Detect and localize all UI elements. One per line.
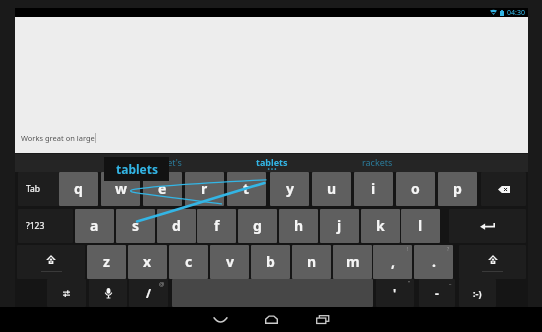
staticText: /: [146, 285, 151, 301]
staticText: .: [432, 252, 436, 271]
staticText: tablet's: [151, 156, 182, 168]
button[interactable]: :-): [459, 279, 496, 307]
button[interactable]: /: [129, 279, 168, 307]
staticText: Tab: [26, 183, 41, 195]
button[interactable]: p: [438, 172, 477, 206]
staticText: h: [294, 216, 304, 235]
button[interactable]: f: [197, 209, 236, 243]
staticText: p: [453, 179, 462, 198]
staticText: r: [201, 179, 208, 198]
button[interactable]: y: [270, 172, 309, 206]
button[interactable]: Home: [257, 307, 285, 332]
button[interactable]: tablets: [222, 154, 322, 172]
staticText: k: [376, 216, 385, 235]
staticText: ": [408, 280, 411, 287]
button[interactable]: i: [354, 172, 393, 206]
staticText: v: [226, 252, 234, 271]
button[interactable]: tablet's: [116, 154, 216, 172]
staticText: j: [337, 216, 342, 235]
button[interactable]: tablets: [104, 157, 169, 181]
staticText: e: [158, 179, 167, 198]
staticText: y: [286, 179, 294, 198]
button[interactable]: x: [128, 245, 167, 279]
button[interactable]: l: [401, 209, 440, 243]
staticText: ?123: [26, 220, 45, 232]
staticText: m: [346, 252, 360, 271]
button[interactable]: c: [169, 245, 208, 279]
staticText: t: [243, 179, 250, 198]
staticText: d: [172, 216, 181, 235]
staticText: ': [393, 285, 397, 301]
button[interactable]: [481, 172, 526, 206]
staticText: tablets: [116, 161, 158, 177]
staticText: l: [418, 216, 423, 235]
button[interactable]: g: [238, 209, 277, 243]
staticText: f: [214, 216, 220, 235]
staticText: s: [132, 216, 140, 235]
staticText: q: [74, 179, 83, 198]
button[interactable]: k: [361, 209, 400, 243]
button[interactable]: v: [210, 245, 249, 279]
button[interactable]: t: [227, 172, 266, 206]
staticText: :-): [473, 287, 482, 299]
staticText: _: [449, 279, 452, 286]
button[interactable]: h: [279, 209, 318, 243]
button[interactable]: e: [143, 172, 182, 206]
staticText: x: [143, 252, 152, 271]
button[interactable]: o: [396, 172, 435, 206]
button[interactable]: s: [116, 209, 155, 243]
button[interactable]: rackets: [327, 154, 427, 172]
button[interactable]: ,: [373, 245, 412, 279]
button[interactable]: w: [101, 172, 140, 206]
button[interactable]: d: [157, 209, 196, 243]
button[interactable]: j: [320, 209, 359, 243]
staticText: ,: [391, 252, 395, 271]
staticText: @: [159, 280, 165, 288]
button[interactable]: n: [292, 245, 331, 279]
staticText: a: [90, 216, 99, 235]
button[interactable]: [47, 279, 86, 307]
staticText: rackets: [362, 156, 393, 168]
staticText: w: [115, 179, 127, 198]
button[interactable]: .: [414, 245, 453, 279]
button[interactable]: [17, 245, 85, 279]
button[interactable]: Recent apps: [308, 307, 336, 332]
button[interactable]: -: [419, 279, 455, 307]
staticText: o: [411, 179, 420, 198]
staticText: u: [327, 179, 337, 198]
staticText: Works great on large: [21, 133, 95, 143]
button[interactable]: a: [75, 209, 114, 243]
button[interactable]: [459, 245, 526, 279]
button[interactable]: [89, 279, 127, 307]
button[interactable]: z: [87, 245, 126, 279]
staticText: 04:30: [507, 8, 525, 17]
staticText: c: [185, 252, 193, 271]
staticText: tablets: [256, 156, 288, 168]
staticText: !: [407, 246, 409, 253]
button[interactable]: b: [251, 245, 290, 279]
staticText: n: [307, 252, 317, 271]
staticText: z: [103, 252, 110, 271]
staticText: b: [266, 252, 275, 271]
staticText: i: [371, 179, 376, 198]
button[interactable]: ': [376, 279, 414, 307]
button[interactable]: Hide keyboard: [206, 307, 234, 332]
staticText: -: [435, 285, 439, 301]
button[interactable]: r: [185, 172, 224, 206]
button[interactable]: u: [312, 172, 351, 206]
button[interactable]: [449, 209, 526, 243]
staticText: ?: [447, 246, 450, 253]
button[interactable]: ?123: [18, 209, 73, 243]
button[interactable]: q: [59, 172, 98, 206]
button[interactable]: m: [333, 245, 372, 279]
button[interactable]: Tab: [18, 172, 59, 206]
staticText: g: [253, 216, 262, 235]
